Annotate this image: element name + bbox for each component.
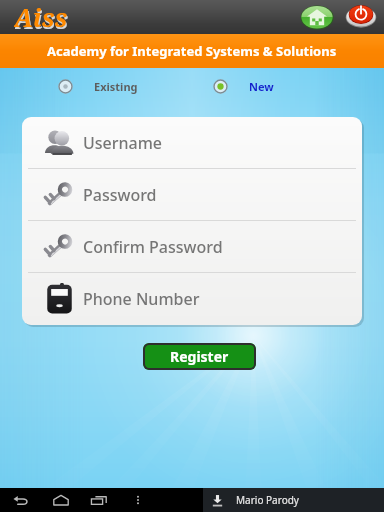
button[interactable]: Register [143, 343, 256, 370]
staticText: Confirm Password [83, 236, 223, 258]
button[interactable]: New [213, 76, 274, 96]
button[interactable]: More options [118, 488, 158, 512]
staticText: New [249, 79, 274, 94]
staticText: Academy for Integrated Systems & Solutio… [47, 42, 337, 60]
button[interactable]: Home [300, 4, 334, 30]
staticText: Password [83, 184, 157, 206]
button[interactable]: Username [22, 117, 362, 168]
staticText: Existing [94, 79, 138, 94]
staticText: Username [83, 132, 163, 154]
staticText: Phone Number [83, 288, 200, 310]
button[interactable]: Power off [344, 3, 378, 31]
button[interactable]: Existing [58, 76, 138, 96]
button[interactable]: Home [42, 488, 80, 512]
button[interactable]: Phone Number [22, 273, 362, 324]
button[interactable]: Mario Parody [211, 488, 299, 512]
staticText: Register [170, 347, 229, 366]
button[interactable]: Recent apps [80, 488, 118, 512]
button[interactable]: Password [22, 169, 362, 220]
staticText: Aiss [15, 2, 69, 34]
staticText: Aiss [14, 0, 68, 32]
staticText: Mario Parody [236, 493, 299, 507]
button[interactable]: Back [0, 488, 42, 512]
button[interactable]: Confirm Password [22, 221, 362, 272]
